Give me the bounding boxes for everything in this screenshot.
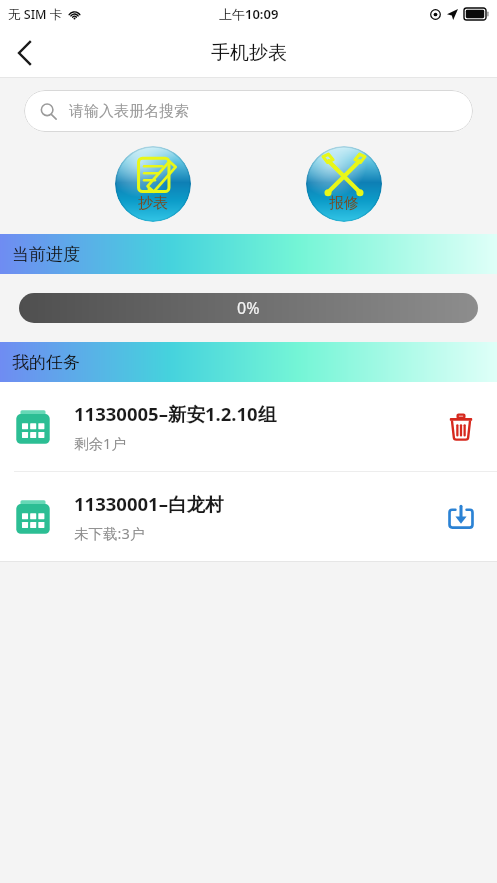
button[interactable]: Back xyxy=(0,29,48,77)
staticText: 11330005–新安1.2.10组 xyxy=(74,401,277,426)
staticText: 请输入表册名搜索 xyxy=(69,102,189,121)
button[interactable]: 报修 xyxy=(306,146,382,222)
staticText: 0% xyxy=(237,297,260,319)
staticText: 无 SIM 卡 xyxy=(8,6,63,23)
staticText: 我的任务 xyxy=(12,352,80,373)
staticText: 手机抄表 xyxy=(211,41,287,65)
button[interactable]: 0% xyxy=(19,293,478,323)
staticText: 报修 xyxy=(329,194,359,213)
staticText: 未下载:3户 xyxy=(74,523,145,543)
button[interactable]: Download xyxy=(439,495,483,539)
button[interactable]: 抄表 xyxy=(115,146,191,222)
staticText: 剩余1户 xyxy=(74,433,126,453)
staticText: 11330001–白龙村 xyxy=(74,491,224,516)
staticText: 抄表 xyxy=(138,194,168,213)
button[interactable]: 11330001–白龙村 xyxy=(0,472,497,561)
button[interactable]: 11330005–新安1.2.10组 xyxy=(0,382,497,471)
button[interactable]: Delete xyxy=(439,405,483,449)
button[interactable]: 请输入表册名搜索 xyxy=(24,90,473,132)
staticText: 当前进度 xyxy=(12,244,80,265)
staticText: 上午10:09 xyxy=(219,5,279,23)
